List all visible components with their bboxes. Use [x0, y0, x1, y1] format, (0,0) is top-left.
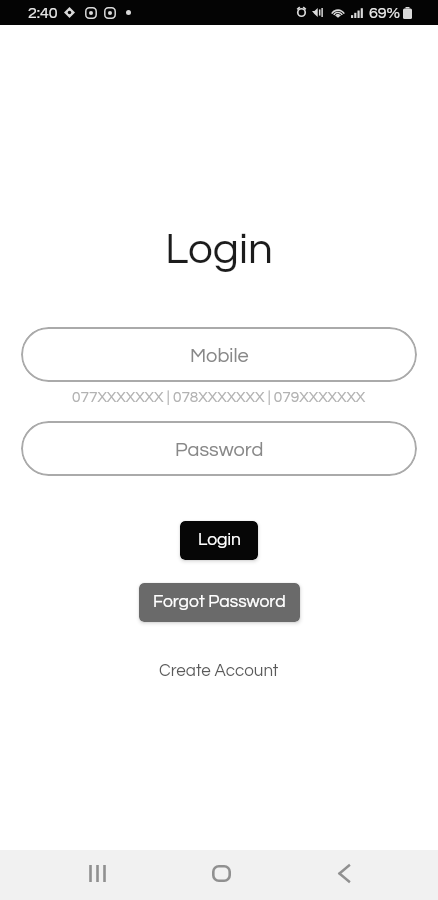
button[interactable]: Mobile	[21, 327, 417, 382]
staticText: Mobile	[190, 346, 249, 367]
staticText: 2:40	[28, 5, 58, 21]
button[interactable]: Home	[192, 848, 250, 898]
button[interactable]: Login	[180, 521, 258, 560]
button[interactable]: Create Account	[149, 655, 289, 687]
staticText: 69%	[369, 5, 401, 21]
staticText: Login	[198, 531, 241, 549]
button[interactable]: Back	[315, 848, 373, 898]
staticText: Create Account	[159, 662, 279, 680]
button[interactable]: Recent apps	[68, 848, 126, 898]
staticText: Forgot Password	[153, 593, 286, 611]
staticText: Password	[175, 440, 264, 461]
staticText: 077XXXXXXX | 078XXXXXXX | 079XXXXXXX	[72, 389, 366, 405]
button[interactable]: Password	[21, 421, 417, 476]
staticText: Login	[165, 227, 273, 272]
button[interactable]: Forgot Password	[139, 583, 300, 622]
